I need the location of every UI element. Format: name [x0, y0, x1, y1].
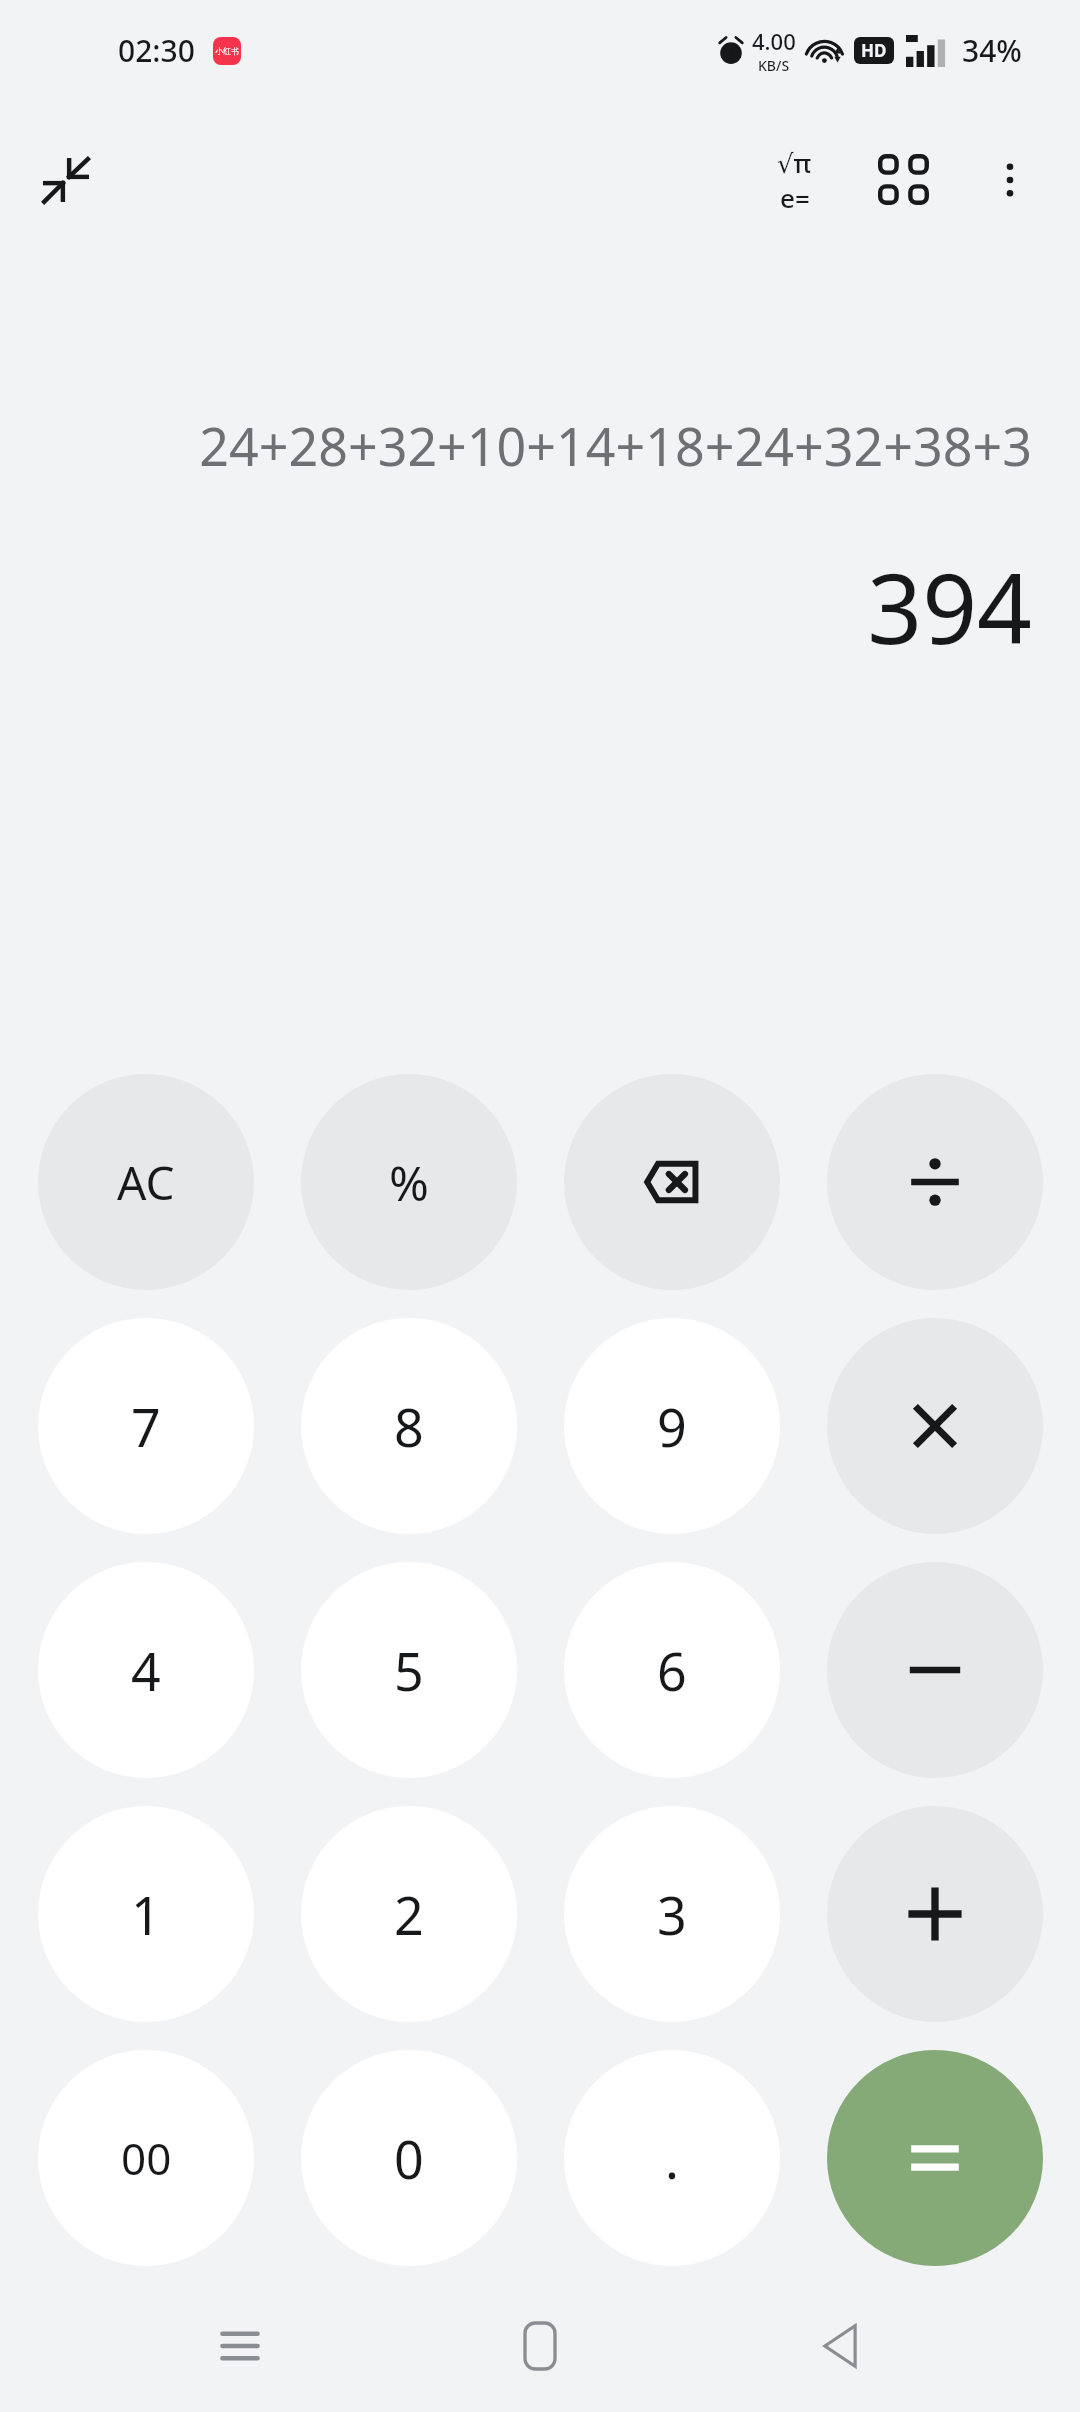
- button[interactable]: %: [301, 1074, 517, 1290]
- button[interactable]: Recents: [180, 2286, 300, 2406]
- staticText: 00: [121, 2128, 172, 2188]
- button[interactable]: More options: [962, 132, 1058, 228]
- button[interactable]: 6: [564, 1562, 780, 1778]
- button[interactable]: Plus: [827, 1806, 1043, 2022]
- staticText: 4: [131, 1635, 161, 1706]
- button[interactable]: AC: [38, 1074, 254, 1290]
- staticText: 4.00: [752, 26, 796, 56]
- staticText: 3: [657, 1879, 687, 1950]
- button[interactable]: Divide: [827, 1074, 1043, 1290]
- staticText: 34%: [962, 30, 1022, 71]
- button[interactable]: 2: [301, 1806, 517, 2022]
- button[interactable]: Scientific mode: [746, 132, 842, 228]
- staticText: KB/S: [758, 56, 790, 75]
- staticText: 6: [657, 1635, 687, 1706]
- staticText: 2: [394, 1879, 424, 1950]
- staticText: √π: [777, 145, 812, 180]
- button[interactable]: Unit converter: [856, 132, 952, 228]
- button[interactable]: 9: [564, 1318, 780, 1534]
- staticText: 5: [394, 1635, 424, 1706]
- button[interactable]: Minus: [827, 1562, 1043, 1778]
- button[interactable]: 4: [38, 1562, 254, 1778]
- button[interactable]: Equals: [827, 2050, 1043, 2266]
- button[interactable]: Home: [480, 2286, 600, 2406]
- staticText: 0: [394, 2123, 424, 2194]
- staticText: 8: [394, 1391, 424, 1462]
- button[interactable]: 8: [301, 1318, 517, 1534]
- staticText: 小红书: [215, 46, 239, 56]
- button[interactable]: .: [564, 2050, 780, 2266]
- staticText: 394: [867, 541, 1032, 672]
- button[interactable]: 00: [38, 2050, 254, 2266]
- button[interactable]: Backspace: [564, 1074, 780, 1290]
- staticText: 1: [131, 1879, 161, 1950]
- button[interactable]: Collapse: [18, 132, 114, 228]
- button[interactable]: 0: [301, 2050, 517, 2266]
- staticText: 7: [131, 1391, 161, 1462]
- button[interactable]: 5: [301, 1562, 517, 1778]
- staticText: 9: [657, 1391, 687, 1462]
- button[interactable]: Multiply: [827, 1318, 1043, 1534]
- button[interactable]: 1: [38, 1806, 254, 2022]
- staticText: AC: [117, 1151, 175, 1214]
- button[interactable]: Back: [780, 2286, 900, 2406]
- staticText: 24+28+32+10+14+18+24+32+38+3: [199, 410, 1032, 481]
- staticText: HD: [861, 39, 887, 62]
- staticText: %: [389, 1150, 429, 1215]
- button[interactable]: 3: [564, 1806, 780, 2022]
- staticText: 02:30: [118, 30, 195, 71]
- staticText: .: [665, 2123, 679, 2194]
- button[interactable]: 7: [38, 1318, 254, 1534]
- staticText: e=: [780, 180, 810, 215]
